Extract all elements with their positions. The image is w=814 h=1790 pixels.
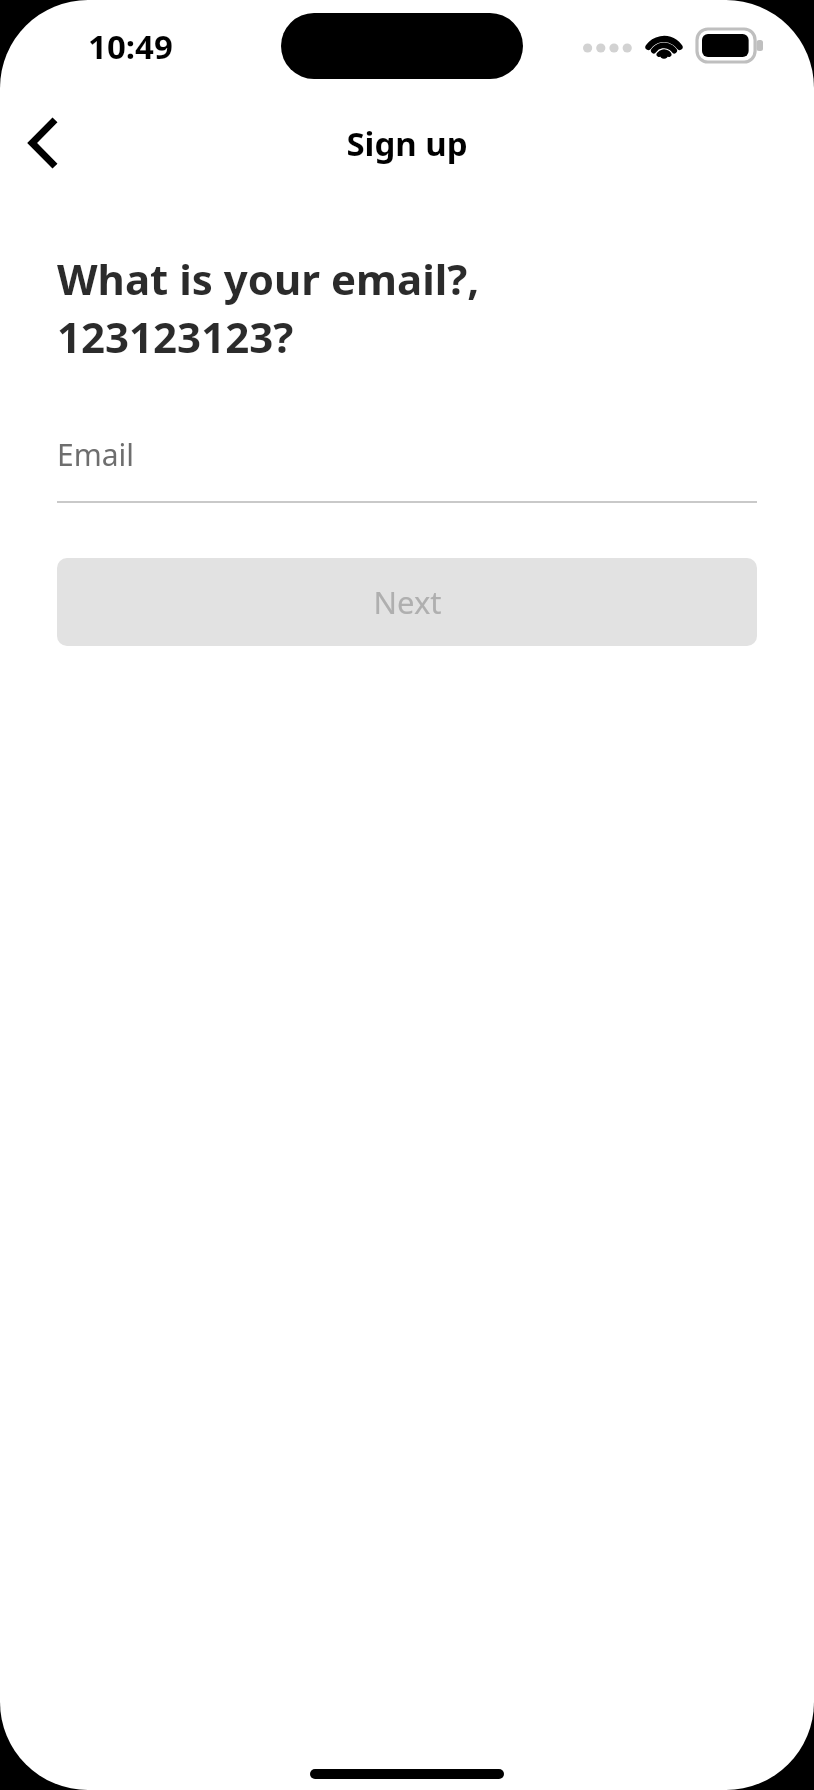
button[interactable]: Back bbox=[0, 100, 86, 186]
staticText: Next bbox=[373, 581, 442, 623]
staticText: 10:49 bbox=[88, 24, 173, 66]
staticText: Sign up bbox=[346, 121, 468, 166]
button[interactable]: Email bbox=[57, 423, 757, 503]
button[interactable]: Next bbox=[57, 558, 757, 646]
staticText: Email bbox=[57, 434, 135, 475]
staticText: What is your email?, 123123123? bbox=[57, 250, 480, 365]
